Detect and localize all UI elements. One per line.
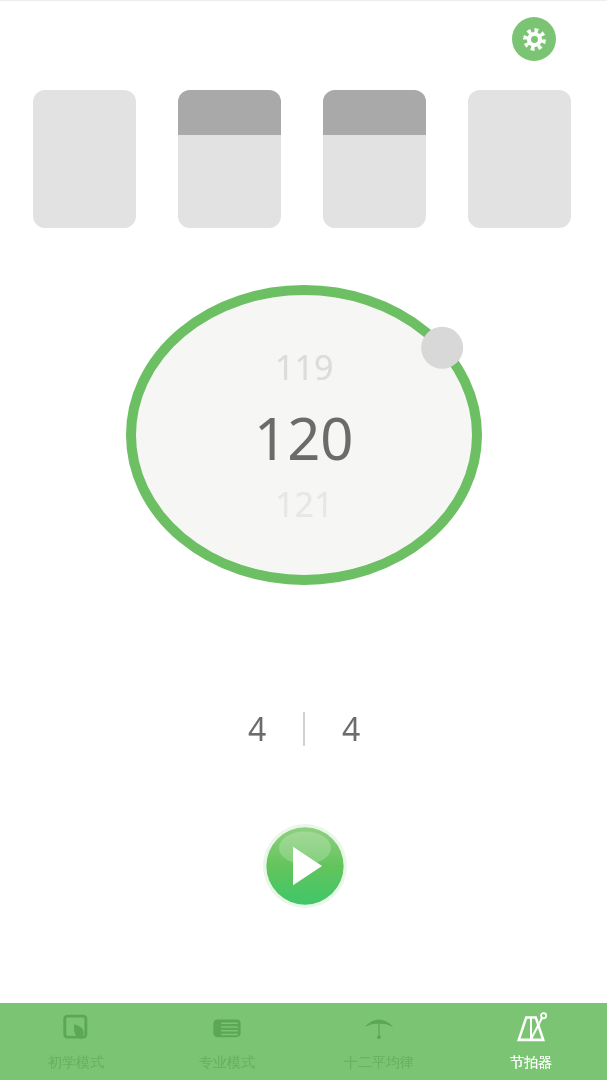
- staticText: 121: [275, 481, 334, 527]
- button[interactable]: Settings: [512, 17, 556, 61]
- button[interactable]: [178, 90, 281, 228]
- button[interactable]: Play: [263, 824, 347, 908]
- staticText: 十二平均律: [344, 1054, 414, 1072]
- button[interactable]: [323, 90, 426, 228]
- button[interactable]: 初学模式: [0, 1003, 151, 1080]
- staticText: 120: [254, 398, 354, 477]
- button[interactable]: 节拍器: [455, 1003, 607, 1080]
- staticText: 节拍器: [510, 1054, 552, 1072]
- button[interactable]: 十二平均律: [303, 1003, 455, 1080]
- staticText: 119: [275, 344, 334, 390]
- staticText: 专业模式: [199, 1054, 255, 1072]
- staticText: 4: [342, 707, 361, 751]
- button[interactable]: Tempo dial: [116, 275, 492, 595]
- staticText: 初学模式: [48, 1054, 104, 1072]
- staticText: 4: [248, 707, 267, 751]
- button[interactable]: 专业模式: [151, 1003, 303, 1080]
- button[interactable]: 4: [211, 706, 303, 752]
- button[interactable]: 4: [305, 706, 397, 752]
